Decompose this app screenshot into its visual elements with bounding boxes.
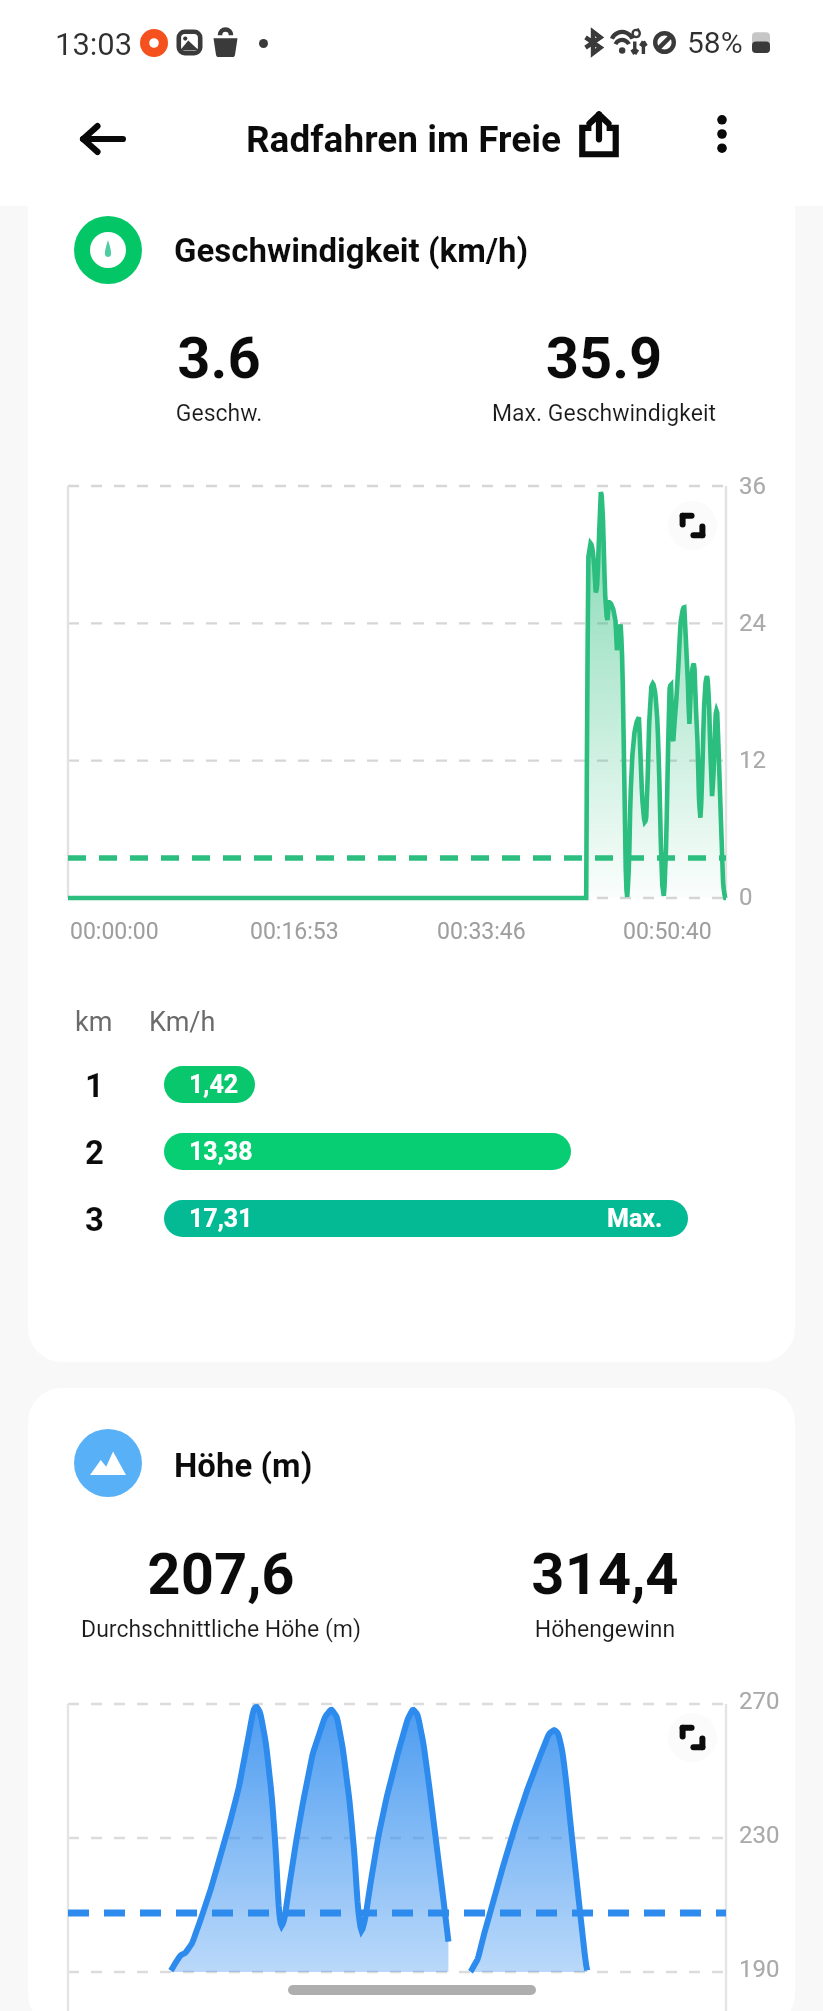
staticText: 36 xyxy=(739,472,766,500)
button[interactable]: Back xyxy=(66,102,140,176)
staticText: 0 xyxy=(739,883,753,911)
staticText: 58% xyxy=(687,25,743,60)
staticText: 00:00:00 xyxy=(70,918,159,945)
staticText: 3.6 xyxy=(28,324,419,392)
staticText: 00:33:46 xyxy=(437,918,526,945)
staticText: 230 xyxy=(739,1821,780,1849)
staticText: Höhe (m) xyxy=(174,1446,313,1485)
button[interactable]: 17,31 xyxy=(164,1200,688,1237)
staticText: Max. xyxy=(607,1204,663,1233)
staticText: 00:16:53 xyxy=(250,918,339,945)
staticText: 24 xyxy=(739,609,766,637)
button[interactable]: 1,42 xyxy=(164,1066,255,1103)
staticText: 1,42 xyxy=(189,1070,239,1099)
staticText: 190 xyxy=(739,1955,780,1983)
staticText: 00:50:40 xyxy=(623,918,712,945)
button[interactable]: More options xyxy=(685,97,759,171)
staticText: Höhengewinn xyxy=(405,1616,795,1643)
staticText: 13,38 xyxy=(189,1137,253,1166)
staticText: 3 xyxy=(85,1200,104,1237)
staticText: 207,6 xyxy=(28,1540,421,1608)
button[interactable]: Expand chart xyxy=(668,501,717,550)
staticText: Max. Geschwindigkeit xyxy=(404,400,795,427)
staticText: 1 xyxy=(85,1066,104,1103)
button[interactable]: Share xyxy=(562,97,636,171)
staticText: 35.9 xyxy=(404,324,795,392)
staticText: km xyxy=(75,1006,113,1038)
staticText: 17,31 xyxy=(189,1204,253,1233)
staticText: Radfahren im Freie xyxy=(246,118,562,161)
button[interactable]: Expand chart xyxy=(668,1713,717,1762)
button[interactable]: 13,38 xyxy=(164,1133,571,1170)
staticText: 270 xyxy=(739,1687,780,1715)
staticText: Geschwindigkeit (km/h) xyxy=(174,231,529,270)
staticText: 2 xyxy=(85,1133,104,1170)
staticText: 12 xyxy=(739,746,766,774)
staticText: Geschw. xyxy=(28,400,419,427)
staticText: 314,4 xyxy=(405,1540,795,1608)
staticText: Durchschnittliche Höhe (m) xyxy=(28,1616,421,1643)
staticText: Km/h xyxy=(149,1006,216,1038)
staticText: 13:03 xyxy=(55,26,133,62)
